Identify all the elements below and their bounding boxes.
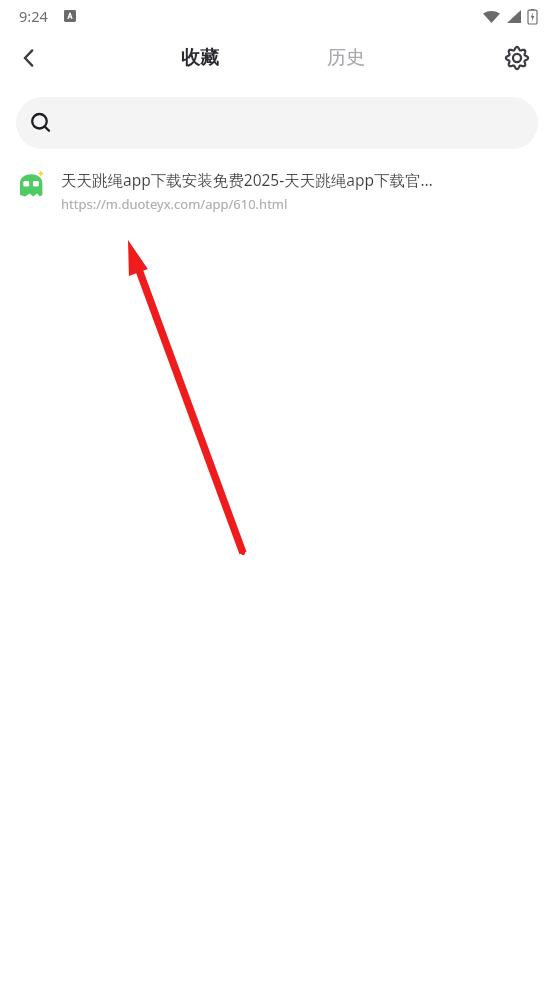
button[interactable]: 收藏	[172, 36, 228, 80]
button[interactable]: Back	[8, 37, 50, 79]
button[interactable]: 历史	[318, 36, 374, 80]
button[interactable]: Search	[16, 97, 538, 149]
staticText: 天天跳绳app下载安装免费2025-天天跳绳app下载官…	[61, 169, 433, 190]
staticText: 收藏	[181, 46, 219, 70]
staticText: 9:24	[19, 6, 48, 26]
button[interactable]: Settings	[496, 37, 538, 79]
staticText: https://m.duoteyx.com/app/610.html	[61, 195, 288, 213]
button[interactable]: 天天跳绳app下载安装免费2025-天天跳绳app下载官…	[0, 167, 554, 221]
staticText: 历史	[327, 46, 365, 70]
